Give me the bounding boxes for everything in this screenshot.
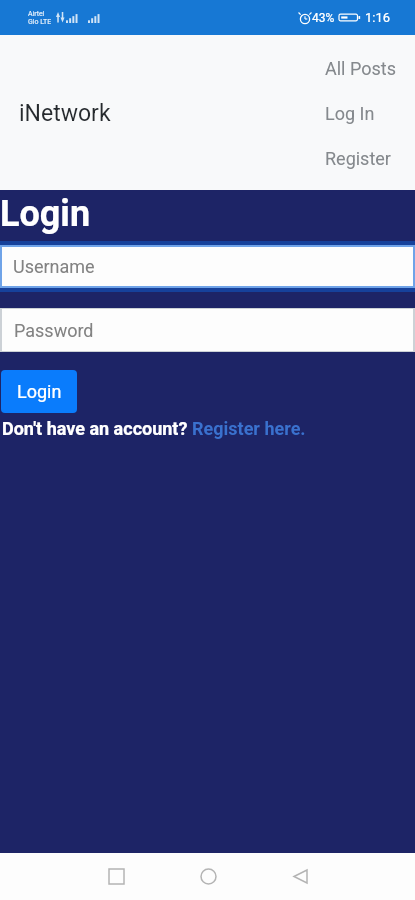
button[interactable]: Username <box>2 247 413 286</box>
staticText: Register <box>325 148 391 169</box>
button[interactable]: Login <box>1 370 77 413</box>
button[interactable]: Back <box>270 853 330 900</box>
staticText: 43% <box>312 11 335 25</box>
button[interactable]: iNetwork <box>0 94 119 133</box>
button[interactable]: Log In <box>325 91 397 136</box>
staticText: Airtel <box>28 10 45 18</box>
staticText: Password <box>14 320 94 341</box>
button[interactable]: Home <box>178 853 238 900</box>
button[interactable]: Password <box>2 309 413 351</box>
button[interactable]: Recent apps <box>86 853 146 900</box>
staticText: iNetwork <box>19 100 111 127</box>
staticText: All Posts <box>325 58 396 79</box>
staticText: Login <box>17 381 62 402</box>
button[interactable]: Register <box>325 136 397 181</box>
button[interactable]: All Posts <box>325 46 397 91</box>
staticText: Don't have an account? <box>2 418 192 439</box>
button[interactable]: Register here. <box>192 418 306 439</box>
staticText: Username <box>13 256 95 277</box>
staticText: Login <box>0 193 91 235</box>
staticText: Log In <box>325 103 375 124</box>
staticText: 1:16 <box>365 10 391 25</box>
staticText: Glo LTE <box>28 18 52 26</box>
